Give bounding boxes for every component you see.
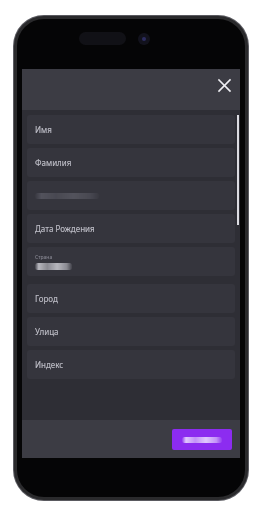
button[interactable]: Фамилия <box>27 148 235 177</box>
button[interactable] <box>27 181 235 210</box>
staticText: Имя <box>35 124 52 135</box>
button[interactable]: Дата Рождения <box>27 214 235 243</box>
staticText: Улица <box>35 326 59 337</box>
button[interactable]: Улица <box>27 317 235 346</box>
button[interactable]: Город <box>27 284 235 313</box>
button[interactable]: Close <box>213 74 235 96</box>
staticText: Фамилия <box>35 157 72 168</box>
button[interactable] <box>172 429 232 450</box>
staticText: Дата Рождения <box>35 223 95 234</box>
staticText: Город <box>35 293 58 304</box>
button[interactable]: Страна <box>27 247 235 276</box>
staticText: Страна <box>35 254 53 261</box>
button[interactable]: Имя <box>27 115 235 144</box>
button[interactable]: Индекс <box>27 350 235 379</box>
staticText: Индекс <box>35 359 64 370</box>
